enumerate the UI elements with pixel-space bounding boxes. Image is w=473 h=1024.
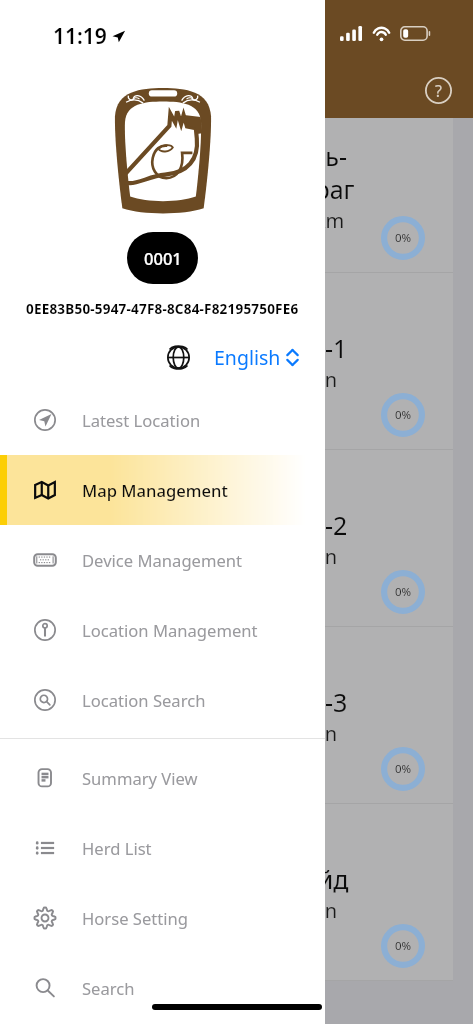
staticText: ? bbox=[435, 80, 442, 102]
button[interactable]: Search bbox=[0, 953, 325, 1023]
button[interactable]: Улаанбаатарын морь- bbox=[0, 118, 453, 273]
staticText: Tuv aimag, Bayan bbox=[172, 543, 337, 570]
button[interactable]: Summary View bbox=[0, 743, 325, 813]
button[interactable]: Улаанбаатарын морь-1 bbox=[0, 273, 453, 450]
staticText: Horse Setting bbox=[82, 907, 189, 930]
staticText: Улаанбаатарын морь-3 bbox=[66, 685, 348, 719]
button[interactable]: Latest Location bbox=[0, 385, 325, 455]
staticText: 12.4 km bbox=[270, 207, 345, 234]
staticText: Location Management bbox=[82, 619, 258, 642]
staticText: 0% bbox=[395, 584, 412, 600]
staticText: Tuv aimag, Bayan bbox=[172, 366, 337, 393]
button[interactable]: Location Management bbox=[0, 595, 325, 665]
button[interactable]: Horse Setting bbox=[0, 883, 325, 953]
button[interactable]: English bbox=[167, 344, 299, 370]
staticText: 0EE83B50-5947-47F8-8C84-F82195750FE6 bbox=[26, 300, 299, 318]
button[interactable]: Herd List bbox=[0, 813, 325, 883]
staticText: Улаанбаатарын морь-2 bbox=[66, 508, 348, 542]
staticText: Search bbox=[82, 977, 135, 1000]
staticText: Latest Location bbox=[82, 409, 201, 432]
button[interactable]: Location Search bbox=[0, 665, 325, 735]
button[interactable]: Тахь хүлэг хөлөг байд bbox=[0, 804, 453, 981]
staticText: Location Search bbox=[82, 689, 206, 712]
staticText: 0% bbox=[395, 761, 412, 777]
staticText: Device Management bbox=[82, 549, 243, 572]
staticText: English bbox=[214, 344, 281, 370]
staticText: Улаанбаатарын морь- bbox=[80, 139, 347, 173]
staticText: 0% bbox=[395, 230, 412, 246]
staticText: Tuv aimag, Bayan bbox=[172, 897, 337, 924]
staticText: 0% bbox=[395, 938, 412, 954]
button[interactable]: Help bbox=[416, 68, 460, 112]
staticText: 0001 bbox=[144, 247, 182, 269]
staticText: Herd List bbox=[82, 837, 152, 860]
button[interactable]: Map Management bbox=[0, 455, 325, 525]
staticText: 0% bbox=[395, 407, 412, 423]
staticText: Улаанбаатарын морь-1 bbox=[66, 331, 348, 365]
staticText: 11:19 bbox=[53, 22, 107, 51]
button[interactable]: 0001 bbox=[127, 232, 198, 284]
staticText: Summary View bbox=[82, 767, 198, 790]
button[interactable]: Улаанбаатарын морь-2 bbox=[0, 450, 453, 627]
button[interactable]: Улаанбаатарын морь-3 bbox=[0, 627, 453, 804]
button[interactable]: Device Management bbox=[0, 525, 325, 595]
staticText: Tuv aimag, Bayan bbox=[172, 720, 337, 747]
staticText: Map Management bbox=[82, 479, 228, 502]
staticText: уралдааны хурдан бараг bbox=[54, 172, 355, 206]
staticText: Тахь хүлэг хөлөг байд bbox=[85, 862, 349, 896]
